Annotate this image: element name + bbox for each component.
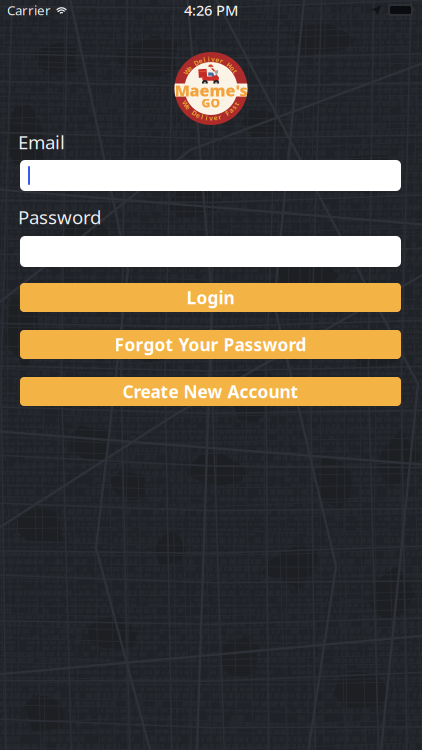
- button[interactable]: Login: [20, 283, 401, 312]
- staticText: D: [194, 58, 199, 67]
- staticText: Login: [186, 286, 234, 309]
- staticText: Maeme's: [174, 80, 247, 101]
- staticText: l: [201, 112, 203, 121]
- staticText: F: [225, 109, 229, 117]
- staticText: W: [183, 99, 189, 108]
- staticText: [225, 58, 227, 67]
- staticText: s: [232, 103, 235, 112]
- staticText: t: [235, 99, 238, 108]
- staticText: v: [209, 114, 213, 122]
- staticText: Carrier: [7, 1, 51, 19]
- button[interactable]: Forgot Your Password: [20, 330, 401, 359]
- staticText: v: [211, 55, 215, 63]
- staticText: e: [187, 64, 191, 73]
- staticText: Forgot Your Password: [114, 333, 306, 356]
- staticText: W: [184, 67, 190, 76]
- button[interactable]: Create New Account: [20, 377, 401, 406]
- staticText: t: [234, 67, 237, 76]
- staticText: o: [230, 64, 234, 73]
- staticText: i: [208, 55, 210, 63]
- staticText: r: [220, 56, 223, 65]
- staticText: a: [229, 106, 233, 115]
- staticText: Create New Account: [122, 380, 298, 403]
- staticText: [190, 106, 192, 115]
- staticText: D: [192, 109, 197, 117]
- staticText: e: [196, 111, 200, 120]
- staticText: e: [186, 103, 190, 112]
- staticText: r: [218, 112, 221, 121]
- staticText: e: [198, 56, 202, 65]
- staticText: 4:26 PM: [184, 0, 238, 20]
- staticText: e: [213, 113, 217, 122]
- staticText: [223, 111, 225, 120]
- staticText: l: [203, 55, 205, 64]
- staticText: [192, 61, 194, 70]
- staticText: e: [215, 55, 219, 64]
- staticText: Email: [18, 130, 65, 154]
- staticText: Password: [18, 205, 101, 229]
- staticText: GO: [201, 95, 220, 111]
- staticText: i: [205, 113, 207, 122]
- staticText: H: [227, 61, 232, 70]
